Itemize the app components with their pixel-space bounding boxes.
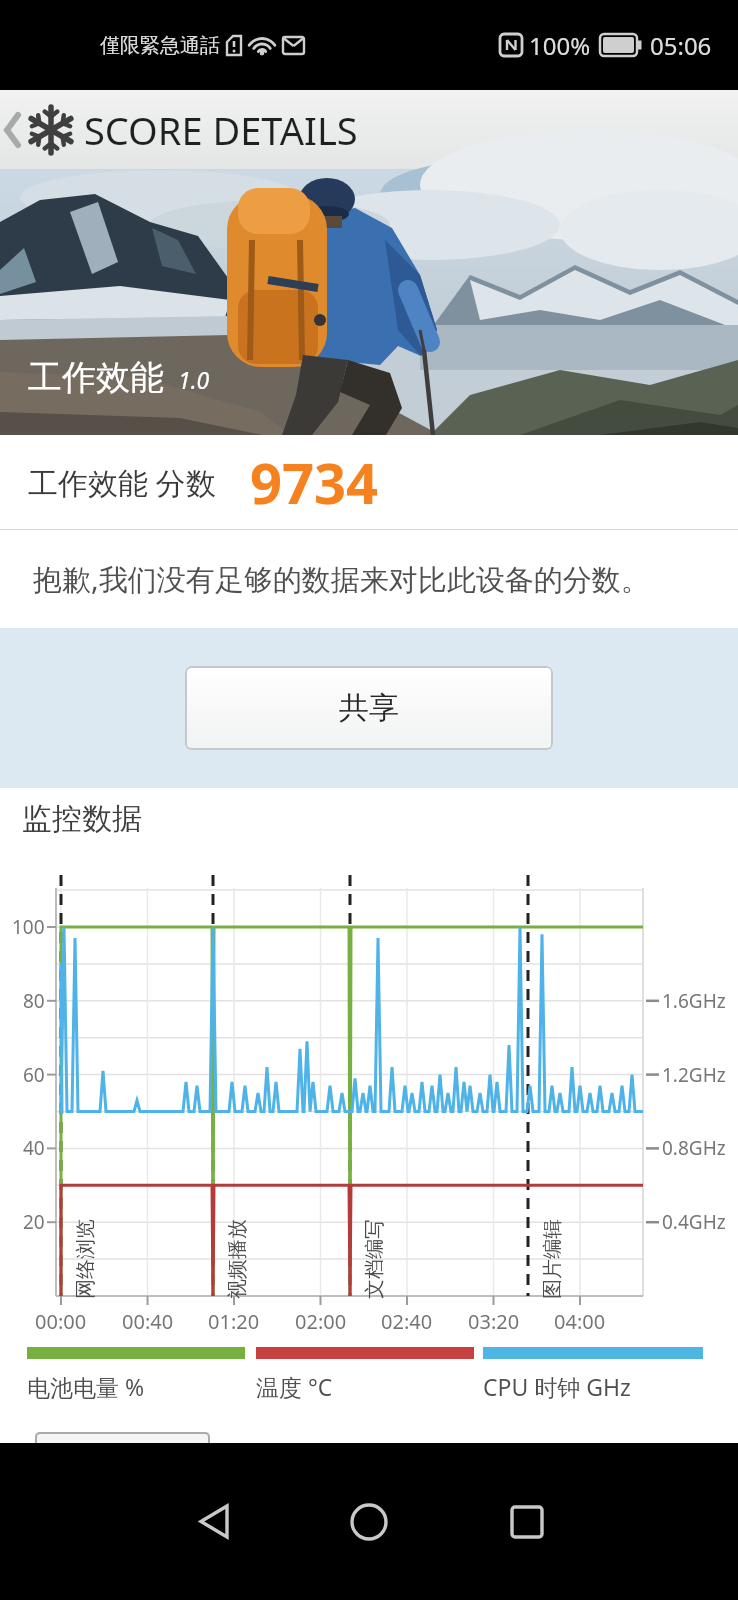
staticText: 1.2GHz [662, 1062, 726, 1088]
staticText: CPU 时钟 GHz [483, 1371, 631, 1402]
staticText: 00:40 [122, 1308, 174, 1335]
staticText: 02:00 [295, 1308, 347, 1335]
staticText: 0.4GHz [662, 1209, 726, 1235]
staticText: 40 [23, 1135, 45, 1161]
button[interactable]: 共享 [185, 666, 553, 750]
button[interactable] [164, 1443, 264, 1600]
staticText: 05:06 [650, 29, 712, 62]
button[interactable] [319, 1443, 419, 1600]
staticText: 工作效能 分数 [28, 462, 216, 503]
staticText: 文档编写 [362, 1219, 387, 1299]
staticText: 抱歉,我们没有足够的数据来对比此设备的分数。 [33, 559, 650, 599]
staticText: 监控数据 [22, 800, 142, 838]
staticText: 100% [529, 29, 591, 62]
staticText: 温度 °C [256, 1371, 333, 1402]
staticText: 03:20 [468, 1308, 520, 1335]
staticText: 00:00 [35, 1308, 87, 1335]
staticText: 网络浏览 [73, 1219, 98, 1299]
staticText: 图片编辑 [540, 1219, 565, 1299]
staticText: 僅限緊急通話 [100, 33, 220, 58]
staticText: 04:00 [554, 1308, 606, 1335]
button[interactable] [477, 1443, 577, 1600]
staticText: 0.8GHz [662, 1135, 726, 1161]
staticText: 20 [23, 1209, 45, 1235]
staticText: 工作效能 [28, 356, 164, 399]
staticText: 9734 [250, 444, 379, 520]
staticText: 100 [12, 914, 45, 940]
staticText: 电池电量 % [27, 1371, 145, 1402]
staticText: 80 [23, 988, 45, 1014]
staticText: 02:40 [381, 1308, 433, 1335]
staticText: SCORE DETAILS [84, 104, 358, 156]
staticText: 1.6GHz [662, 988, 726, 1014]
staticText: 1.0 [178, 364, 210, 395]
staticText: 01:20 [208, 1308, 260, 1335]
staticText: 视频播放 [225, 1219, 250, 1299]
button[interactable] [0, 90, 26, 170]
staticText: 60 [23, 1062, 45, 1088]
staticText: 共享 [339, 689, 399, 727]
